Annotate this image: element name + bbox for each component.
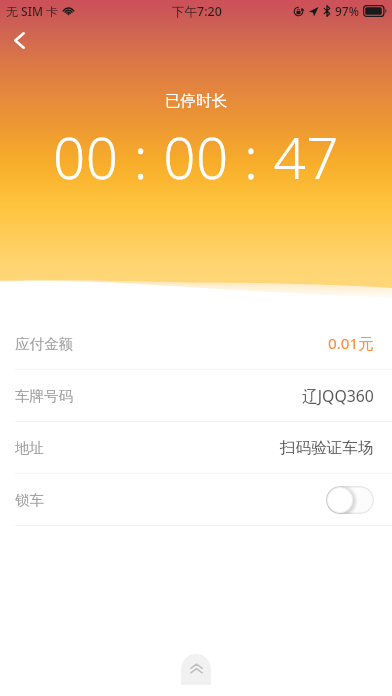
button[interactable]: 应付金额 [0, 318, 392, 370]
staticText: 应付金额 [15, 335, 73, 353]
button[interactable]: Lock car [326, 486, 374, 514]
staticText: 00 : 00 : 47 [0, 119, 392, 196]
staticText: 扫码验证车场 [280, 438, 374, 458]
staticText: 锁车 [15, 491, 44, 509]
button[interactable]: 地址 [0, 422, 392, 474]
staticText: 车牌号码 [15, 387, 73, 405]
staticText: 下午7:20 [172, 3, 222, 20]
staticText: 辽JQQ360 [302, 385, 374, 407]
staticText: 97% [335, 3, 359, 19]
button[interactable]: 锁车 [0, 474, 392, 526]
staticText: 无 SIM 卡 [6, 3, 59, 19]
staticText: 0.01元 [328, 333, 374, 354]
button[interactable]: 车牌号码 [0, 370, 392, 422]
button[interactable]: Back [0, 22, 42, 64]
button[interactable]: Expand details [181, 654, 211, 685]
staticText: 地址 [15, 439, 44, 457]
staticText: 已停时长 [0, 91, 392, 111]
